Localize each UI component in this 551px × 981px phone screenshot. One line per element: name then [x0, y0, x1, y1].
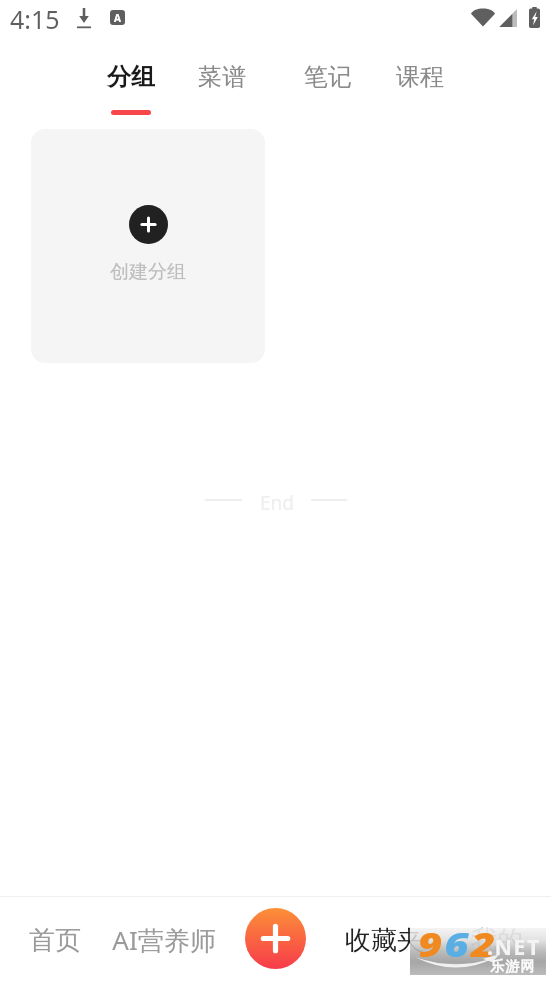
staticText: 4:15	[10, 2, 60, 36]
button[interactable]: 我的	[439, 907, 551, 973]
button[interactable]: 创建分组	[31, 129, 265, 363]
staticText: A	[114, 11, 121, 25]
staticText: 2	[471, 922, 497, 967]
button[interactable]: Add	[245, 908, 306, 969]
button[interactable]: 分组	[93, 50, 169, 120]
staticText: 创建分组	[110, 260, 186, 284]
button[interactable]: 首页	[0, 907, 113, 973]
button[interactable]: 笔记	[290, 50, 366, 120]
button[interactable]: 收藏夹	[326, 907, 442, 973]
staticText: 分组	[107, 62, 155, 92]
button[interactable]: 菜谱	[184, 50, 260, 120]
staticText: End	[260, 490, 294, 510]
button[interactable]: 课程	[382, 50, 458, 120]
staticText: 课程	[396, 62, 444, 92]
staticText: 笔记	[304, 62, 352, 92]
staticText: 收藏夹	[345, 924, 423, 957]
staticText: 我的	[471, 924, 523, 957]
staticText: 菜谱	[198, 62, 246, 92]
button[interactable]: AI营养师	[106, 907, 222, 973]
staticText: .NET	[487, 933, 542, 962]
staticText: 乐游网	[490, 958, 536, 976]
staticText: 9	[418, 922, 444, 967]
staticText: AI营养师	[112, 922, 216, 958]
staticText: 6	[444, 922, 471, 967]
staticText: 首页	[29, 924, 81, 957]
